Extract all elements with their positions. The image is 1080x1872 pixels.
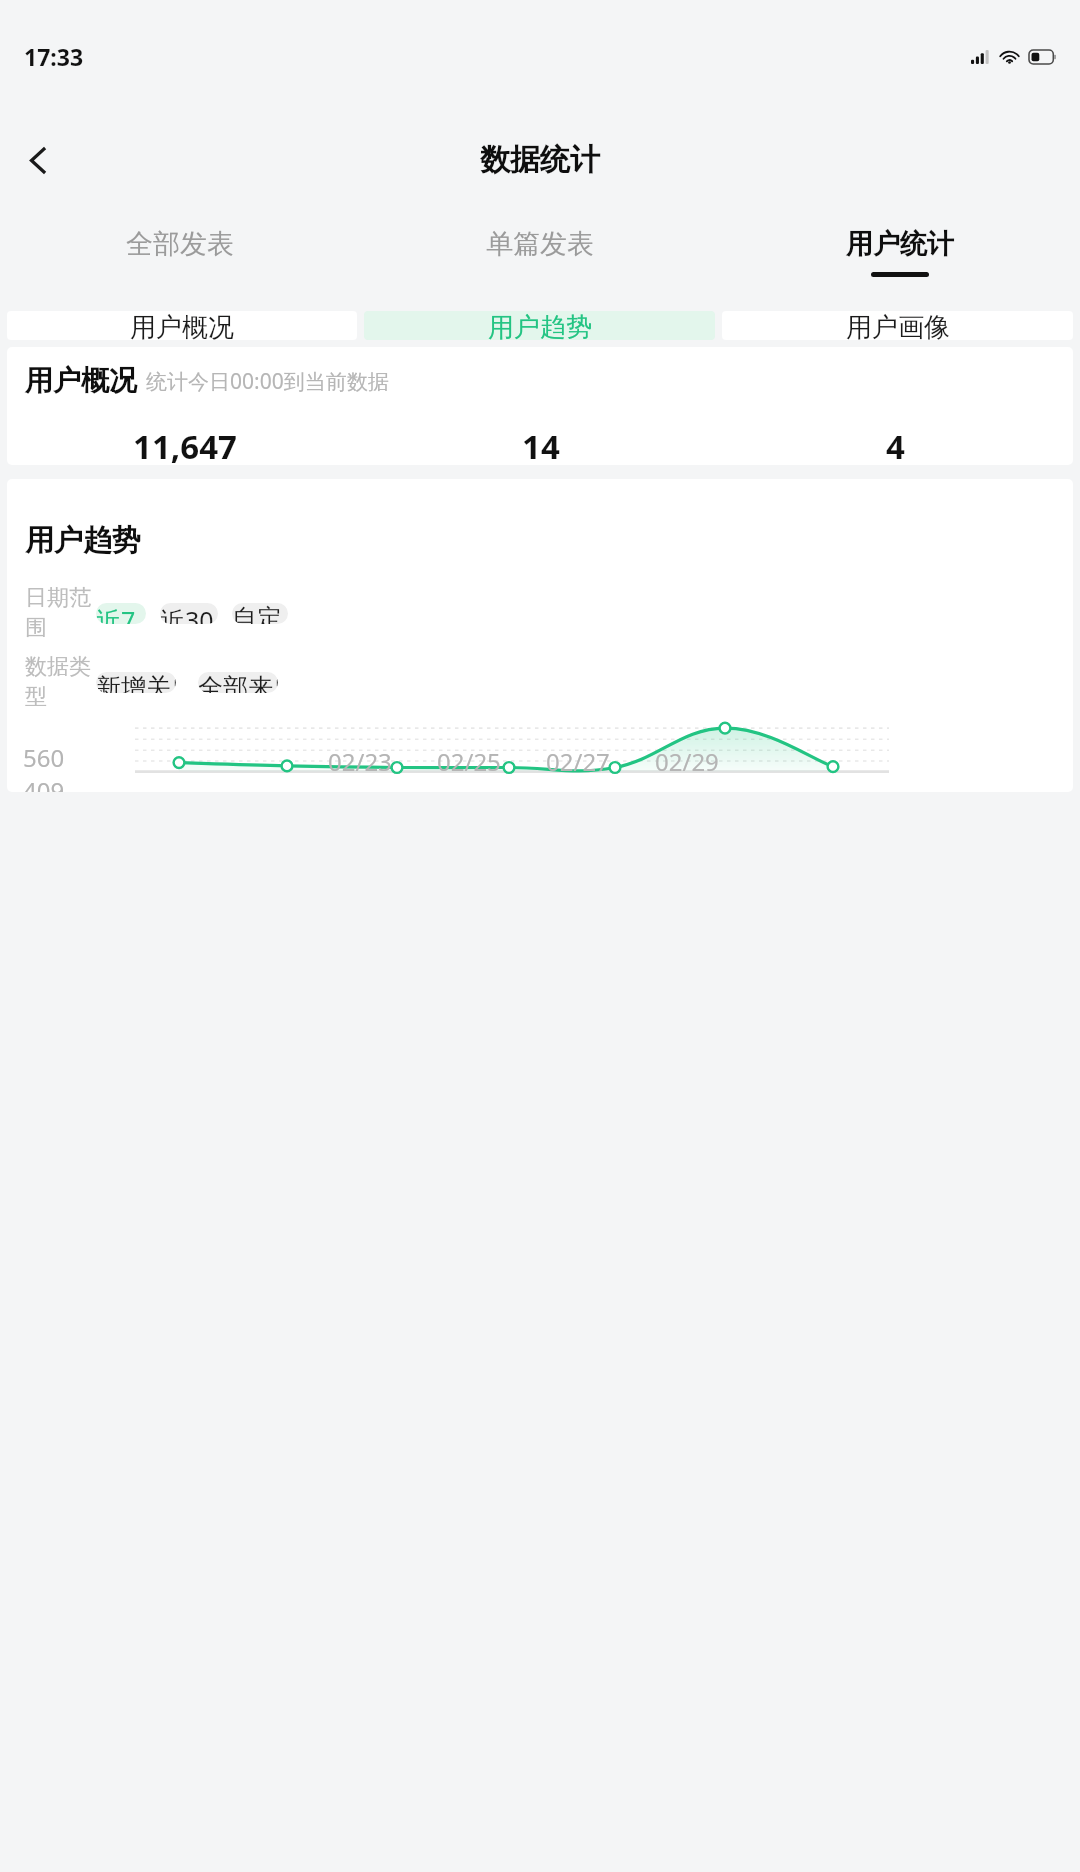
staticText: 新增关注: [96, 672, 176, 693]
staticText: 02/29: [655, 745, 719, 778]
staticText: 近7日: [96, 603, 146, 624]
button[interactable]: 新增关注: [96, 672, 176, 693]
button[interactable]: 用户画像: [722, 311, 1073, 340]
staticText: 用户统计: [846, 227, 954, 261]
staticText: 用户概况: [130, 311, 234, 340]
staticText: 数据类型: [25, 653, 96, 711]
staticText: 560: [23, 741, 65, 774]
staticText: 用户概况: [25, 363, 137, 398]
staticText: 02/23: [328, 745, 392, 778]
button[interactable]: 自定义: [232, 603, 288, 624]
staticText: 11,647: [133, 424, 237, 465]
staticText: 02/25: [437, 745, 501, 778]
staticText: 17:33: [24, 41, 84, 72]
staticText: 近30日: [160, 603, 218, 624]
button[interactable]: 用户趋势: [364, 311, 715, 340]
button[interactable]: 近30日: [160, 603, 218, 624]
staticText: 自定义: [232, 603, 288, 624]
staticText: 统计今日00:00到当前数据: [146, 367, 389, 396]
staticText: 用户画像: [846, 311, 950, 340]
staticText: 用户趋势: [25, 522, 141, 559]
staticText: 单篇发表: [486, 227, 594, 261]
button[interactable]: 用户概况: [7, 311, 357, 340]
staticText: 4: [886, 424, 905, 465]
button[interactable]: 全部发表: [0, 206, 360, 298]
button[interactable]: 近7日: [96, 603, 146, 624]
staticText: 02/27: [546, 745, 610, 778]
button[interactable]: Back: [7, 129, 69, 191]
staticText: 409: [23, 774, 65, 792]
staticText: 数据统计: [480, 141, 600, 179]
staticText: 14: [522, 424, 560, 465]
staticText: 全部来源: [198, 672, 278, 693]
button[interactable]: 用户统计: [720, 206, 1080, 298]
staticText: 日期范围: [25, 584, 96, 642]
button[interactable]: 全部来源: [198, 672, 278, 693]
staticText: 全部发表: [126, 227, 234, 261]
staticText: 用户趋势: [488, 311, 592, 340]
button[interactable]: 单篇发表: [360, 206, 720, 298]
